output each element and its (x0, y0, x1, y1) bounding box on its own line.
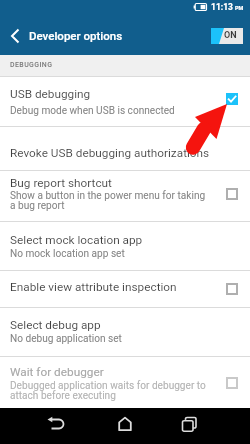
staticText: Select mock location app (10, 233, 143, 247)
staticText: Select debug app (10, 318, 101, 332)
button[interactable]: Select debug app (0, 308, 250, 356)
staticText: Show a button in the power menu for taki… (10, 190, 206, 202)
staticText: Bug report shortcut (10, 176, 112, 190)
button[interactable]: Revoke USB debugging authorizations (0, 127, 250, 170)
button[interactable]: Select mock location app (0, 222, 250, 270)
button[interactable]: Bug report shortcut (0, 171, 250, 221)
staticText: No mock location app set (10, 248, 125, 260)
button[interactable] (117, 416, 133, 432)
button[interactable]: USB debugging (0, 77, 250, 126)
staticText: 11:13 (211, 2, 233, 12)
staticText: No debug application set (10, 333, 122, 345)
button[interactable] (226, 283, 238, 295)
staticText: USB debugging (10, 87, 91, 101)
button[interactable] (226, 188, 238, 200)
staticText: Debugged application waits for debugger … (10, 380, 206, 392)
button[interactable] (6, 26, 26, 46)
button[interactable]: ON (211, 28, 243, 44)
button[interactable] (181, 416, 198, 432)
staticText: Wait for debugger (10, 365, 104, 379)
staticText: PM (235, 5, 244, 11)
staticText: Enable view attribute inspection (10, 280, 177, 294)
staticText: a bug report (10, 200, 65, 212)
staticText: Developer options (29, 29, 123, 42)
staticText: Debug mode when USB is connected (10, 105, 175, 117)
staticText: attach before executing (10, 390, 116, 402)
button[interactable] (46, 416, 66, 432)
staticText: Revoke USB debugging authorizations (10, 146, 210, 160)
staticText: DEBUGGING (10, 61, 53, 69)
staticText: ON (224, 30, 237, 41)
button[interactable]: Enable view attribute inspection (0, 271, 250, 307)
button[interactable] (226, 93, 238, 105)
